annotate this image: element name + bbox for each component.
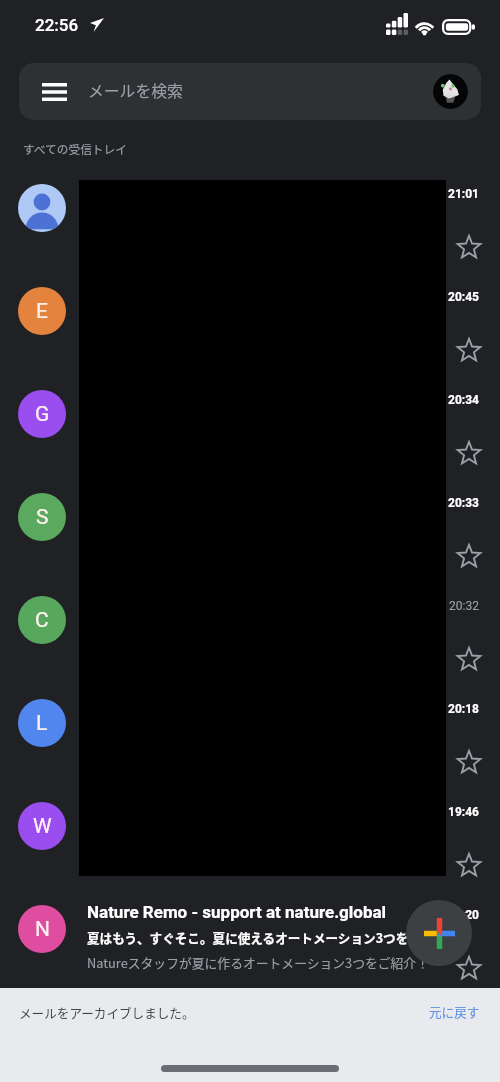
button[interactable]: Star xyxy=(450,640,488,678)
button[interactable]: E xyxy=(0,259,500,362)
button[interactable]: L xyxy=(0,671,500,774)
button[interactable]: 21:01 xyxy=(0,156,500,259)
button[interactable]: Star xyxy=(450,949,488,987)
staticText: 20:33 xyxy=(448,496,479,510)
button[interactable]: Star xyxy=(450,434,488,472)
staticText: メールをアーカイブしました。 xyxy=(19,1003,195,1021)
staticText: 19:46 xyxy=(448,805,479,819)
button[interactable]: Star xyxy=(450,743,488,781)
button[interactable]: Compose xyxy=(406,900,472,966)
button[interactable]: S xyxy=(0,465,500,568)
staticText: すべての受信トレイ xyxy=(23,140,127,157)
button[interactable]: Menu xyxy=(19,63,481,120)
staticText: W xyxy=(33,814,52,839)
staticText: N xyxy=(35,917,50,942)
staticText: 21:01 xyxy=(448,187,479,201)
button[interactable]: Star xyxy=(450,846,488,884)
staticText: Natureスタッフが夏に作るオートメーション3つをご紹介！… xyxy=(87,953,442,972)
staticText: L xyxy=(36,711,48,736)
button[interactable]: W xyxy=(0,774,500,877)
button[interactable]: Star xyxy=(450,537,488,575)
staticText: 20:32 xyxy=(449,599,479,613)
staticText: S xyxy=(36,505,49,530)
button[interactable]: G xyxy=(0,362,500,465)
staticText: 20:34 xyxy=(448,393,479,407)
button[interactable]: Account xyxy=(433,74,468,109)
staticText: 20:45 xyxy=(448,290,479,304)
staticText: Nature Remo - support at nature.global xyxy=(87,902,387,922)
staticText: 22:56 xyxy=(35,15,79,35)
staticText: E xyxy=(36,299,48,324)
staticText: メールを検索 xyxy=(88,79,183,102)
staticText: 夏はもう、すぐそこ。夏に使えるオートメーション3つを xyxy=(87,928,409,946)
button[interactable]: Star xyxy=(450,228,488,266)
button[interactable]: N xyxy=(0,877,500,980)
staticText: 元に戻す xyxy=(429,1002,480,1020)
staticText: C xyxy=(35,608,49,633)
staticText: G xyxy=(35,402,50,427)
button[interactable]: 元に戻す xyxy=(429,1002,480,1020)
button[interactable]: C xyxy=(0,568,500,671)
staticText: 19:20 xyxy=(448,908,479,922)
button[interactable]: Menu xyxy=(38,76,70,108)
staticText: 20:18 xyxy=(448,702,479,716)
button[interactable]: Star xyxy=(450,331,488,369)
